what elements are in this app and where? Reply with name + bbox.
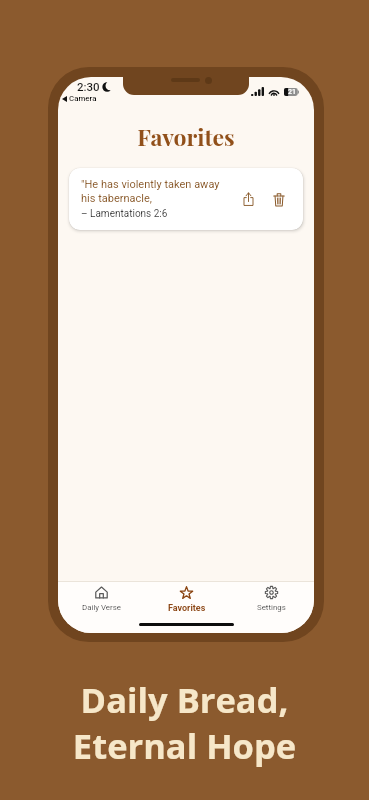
button[interactable]: Daily Verse: [58, 586, 144, 612]
staticText: "He has violently taken away his taberna…: [81, 178, 220, 205]
staticText: Daily Verse: [82, 603, 121, 612]
button[interactable]: Favorites: [144, 586, 229, 614]
staticText: – Lamentations 2:6: [81, 208, 168, 220]
button[interactable]: Delete: [268, 188, 290, 210]
button[interactable]: Share: [237, 188, 259, 210]
staticText: Daily Bread, Eternal Hope: [0, 676, 369, 769]
button[interactable]: Settings: [229, 586, 314, 612]
button[interactable]: "He has violently taken away his taberna…: [69, 168, 303, 230]
staticText: 2:30: [77, 80, 100, 93]
staticText: Favorites: [58, 121, 314, 152]
staticText: 21: [288, 88, 296, 96]
staticText: Camera: [69, 94, 97, 103]
staticText: Settings: [257, 603, 286, 612]
staticText: Favorites: [168, 603, 206, 614]
